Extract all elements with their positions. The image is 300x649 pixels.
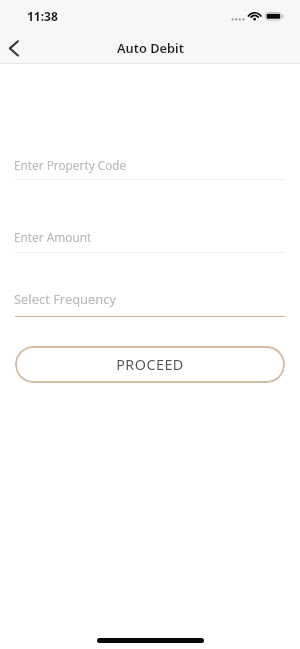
button[interactable]: Back [0,32,32,64]
staticText: 11:38 [27,8,58,24]
staticText: Auto Debit [117,39,184,56]
staticText: Enter Property Code [14,157,127,173]
staticText: Enter Amount [14,229,92,245]
staticText: PROCEED [116,355,184,374]
staticText: Select Frequency [14,290,117,308]
button[interactable]: PROCEED [15,346,285,383]
